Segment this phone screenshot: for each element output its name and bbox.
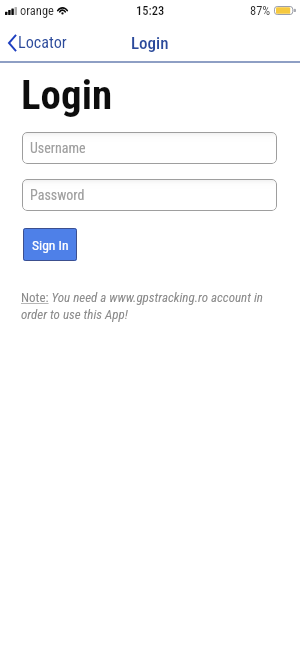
staticText: orange (20, 3, 54, 18)
button[interactable]: Sign In (23, 228, 77, 261)
button[interactable]: Username (22, 132, 277, 164)
staticText: Password (30, 187, 85, 203)
staticText: Note: You need a www.gpstracking.ro acco… (21, 290, 278, 322)
staticText: Login (21, 71, 113, 119)
staticText: Login (131, 33, 169, 53)
staticText: Username (30, 140, 86, 156)
staticText: Locator (18, 33, 67, 52)
staticText: 87% (250, 3, 271, 18)
button[interactable]: Password (22, 179, 277, 211)
button[interactable]: Back to Locator (0, 27, 75, 58)
staticText: Sign In (32, 237, 69, 253)
staticText: 15:23 (136, 3, 165, 18)
